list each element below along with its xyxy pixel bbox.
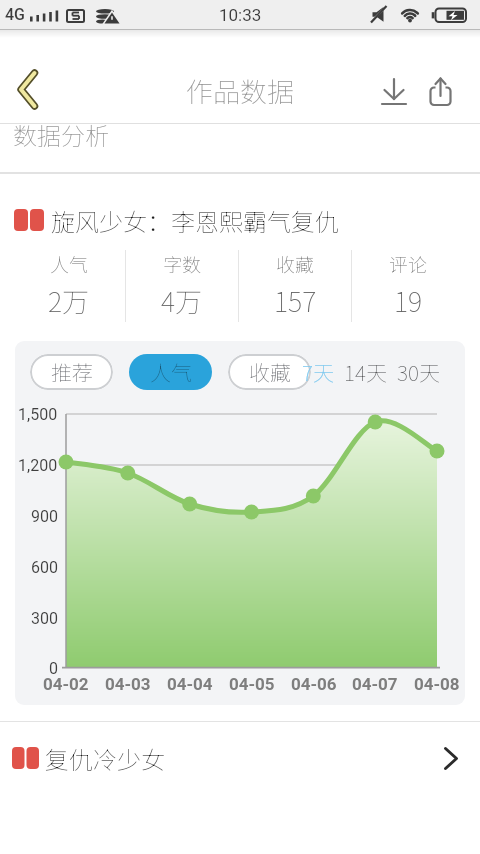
staticText: 04-07 [352,674,398,694]
button[interactable]: 收藏 [228,354,311,390]
staticText: 4万 [161,281,203,320]
staticText: 7天 [302,357,334,387]
staticText: 推荐 [51,357,93,387]
button[interactable] [424,72,460,112]
button[interactable] [376,70,412,110]
staticText: 字数 [163,250,202,278]
staticText: 157 [274,281,317,320]
button[interactable]: 30天 [397,354,440,390]
staticText: 04-04 [167,674,213,694]
staticText: 19 [394,281,423,320]
staticText: 人气 [50,250,89,278]
staticText: 收藏 [276,250,315,278]
staticText: 1,500 [18,405,58,424]
staticText: 04-06 [291,674,337,694]
staticText: 300 [31,609,58,628]
button[interactable] [0,30,62,124]
staticText: 900 [31,507,58,526]
staticText: 04-02 [43,674,89,694]
button[interactable]: 复仇冷少女 [0,734,480,782]
staticText: 04-03 [105,674,151,694]
staticText: 10:33 [219,5,262,25]
staticText: 30天 [397,357,440,387]
button[interactable]: 推荐 [30,354,113,390]
staticText: 数据分析 [13,117,109,149]
staticText: 04-08 [414,674,460,694]
button[interactable]: 7天 [302,354,334,390]
button[interactable]: 人气 [129,354,212,390]
staticText: 0 [49,659,58,678]
staticText: 评论 [389,250,428,278]
staticText: 人气 [150,357,192,387]
staticText: 14天 [344,357,387,387]
staticText: 收藏 [249,357,291,387]
button[interactable]: 旋风少女：李恩熙霸气复仇 [0,196,480,244]
staticText: 4G [5,5,25,24]
staticText: 旋风少女：李恩熙霸气复仇 [51,203,339,238]
staticText: 600 [31,558,58,577]
button[interactable]: 14天 [344,354,387,390]
staticText: 04-05 [229,674,275,694]
staticText: 作品数据 [186,71,294,105]
staticText: 1,200 [18,456,58,475]
staticText: 复仇冷少女 [45,741,165,776]
staticText: 2万 [48,281,90,320]
